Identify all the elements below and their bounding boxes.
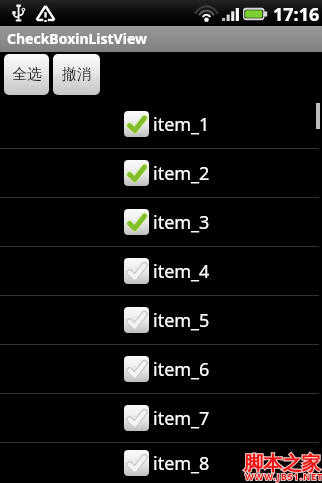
staticText: 撤消 [62,65,92,84]
staticText: item_2 [153,161,210,186]
button[interactable]: item_8 [0,443,322,483]
staticText: item_5 [153,308,210,333]
staticText: 全选 [12,65,42,84]
staticText: item_7 [153,406,210,431]
staticText: item_6 [153,357,210,382]
button[interactable]: item_5 [0,296,322,344]
staticText: WWW.JB51.NET [245,470,322,482]
staticText: item_8 [153,451,210,476]
staticText: 脚本之家 [244,452,321,476]
staticText: 脚本之家 [244,452,321,476]
button[interactable]: item_2 [0,149,322,197]
button[interactable]: item_1 [0,100,322,148]
staticText: item_1 [153,112,210,137]
staticText: item_3 [153,210,210,235]
other: Warning [36,5,55,22]
button[interactable]: 全选 [4,54,49,95]
button[interactable]: item_7 [0,394,322,442]
button[interactable]: item_3 [0,198,322,246]
other: Wi-Fi [198,6,215,22]
staticText: CheckBoxinListView [7,29,147,48]
staticText: WWW.JB51.NET [245,470,322,482]
staticText: item_4 [153,259,210,284]
button[interactable]: item_4 [0,247,322,295]
button[interactable]: item_6 [0,345,322,393]
staticText: 17:16 [273,2,320,27]
button[interactable]: 撤消 [53,54,100,95]
other: USB connected [12,4,26,22]
